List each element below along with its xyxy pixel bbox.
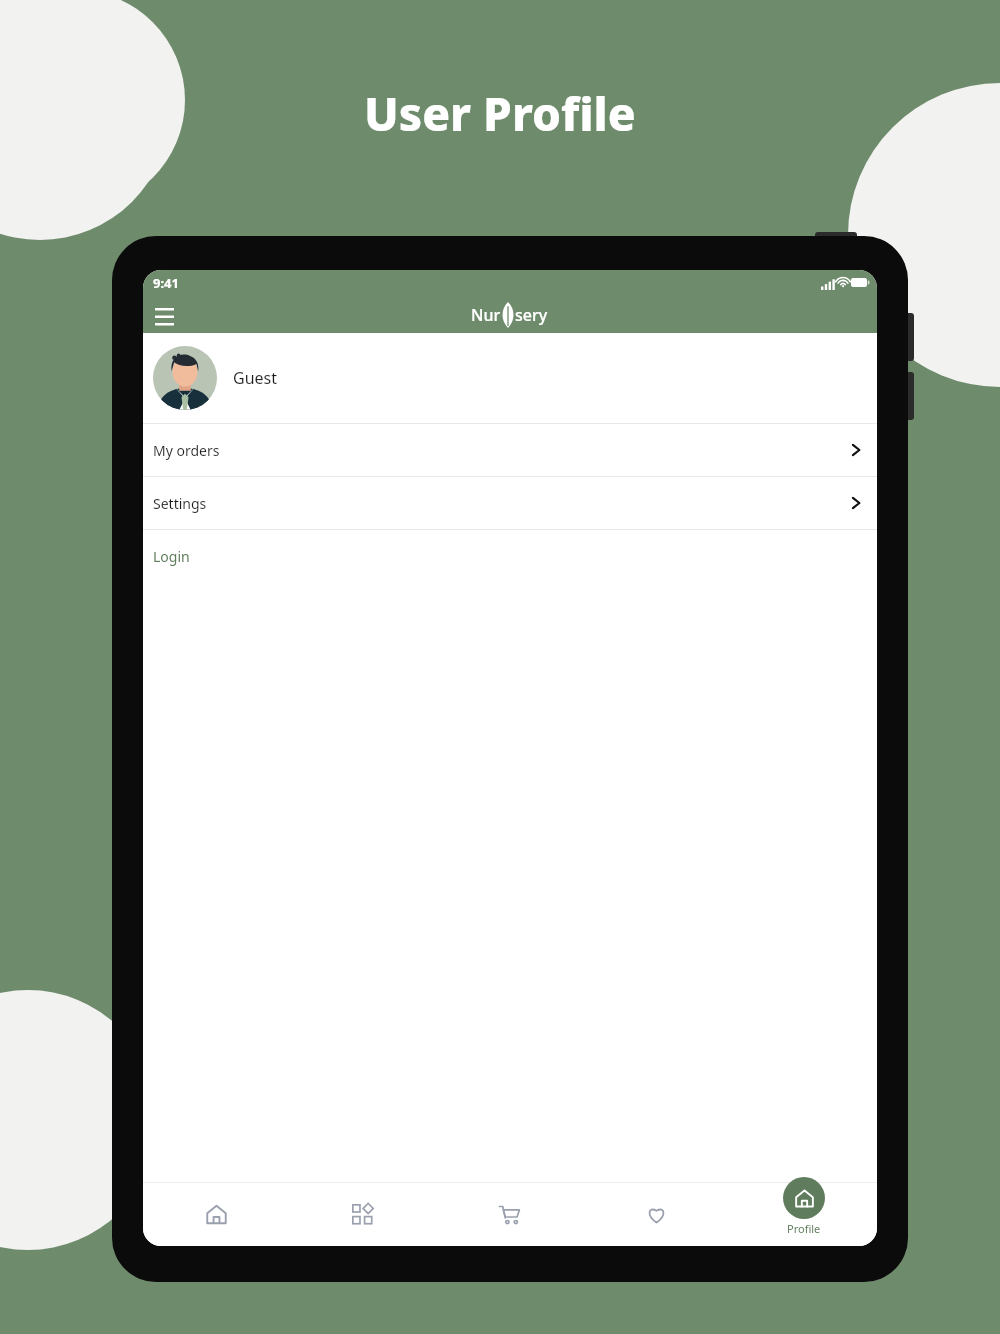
button[interactable]: Menu [147,298,181,332]
staticText: Nur [471,304,501,326]
staticText: Login [153,547,190,566]
staticText: 9:41 [153,274,179,292]
button[interactable]: Settings [143,477,877,529]
staticText: My orders [153,441,220,460]
button[interactable]: Categories [289,1182,436,1246]
staticText: Settings [153,494,207,513]
button[interactable]: Profile [730,1182,877,1246]
button[interactable]: Guest [143,333,877,423]
button[interactable]: Favourites [583,1182,730,1246]
button[interactable]: Home [143,1182,289,1246]
staticText: sery [515,304,548,326]
staticText: Profile [787,1221,821,1236]
staticText: User Profile [364,82,636,145]
button[interactable]: Login [143,530,877,582]
button[interactable]: My orders [143,424,877,476]
button[interactable]: Cart [436,1182,583,1246]
staticText: Guest [233,367,278,389]
